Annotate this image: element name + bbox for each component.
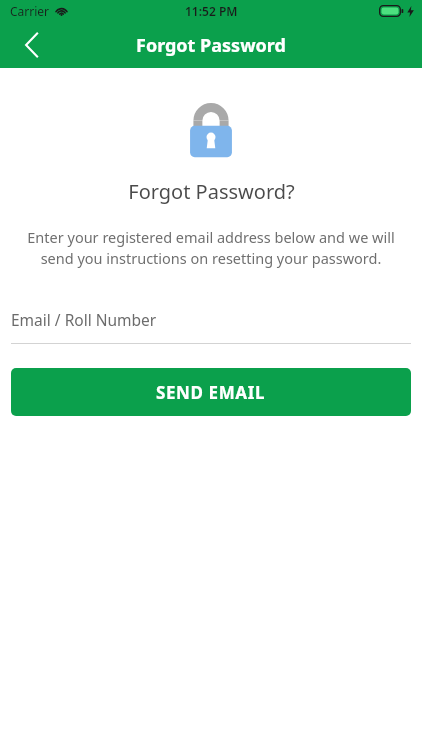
button[interactable]: Email / Roll Number — [11, 305, 411, 344]
button[interactable]: SEND EMAIL — [11, 368, 411, 416]
staticText: Carrier — [10, 3, 50, 19]
staticText: 11:52 PM — [185, 3, 238, 19]
staticText: Forgot Password? — [128, 178, 295, 205]
staticText: Enter your registered email address belo… — [22, 227, 400, 269]
staticText: Forgot Password — [136, 33, 286, 58]
staticText: SEND EMAIL — [156, 381, 266, 404]
button[interactable]: Back — [12, 25, 52, 65]
staticText: Email / Roll Number — [11, 309, 157, 330]
